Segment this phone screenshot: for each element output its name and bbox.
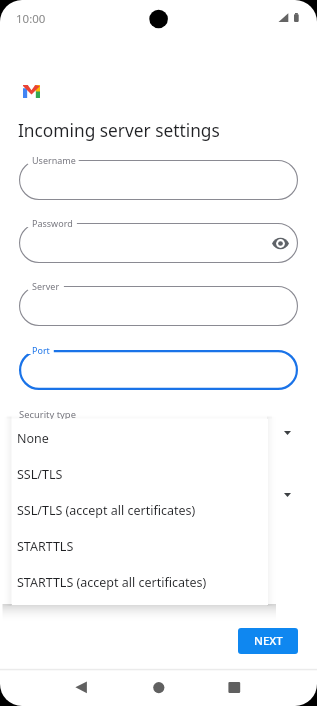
- button[interactable]: Port: [19, 350, 298, 390]
- button[interactable]: Server: [19, 286, 298, 326]
- button[interactable]: Expand dropdown: [276, 422, 298, 444]
- staticText: STARTTLS: [17, 538, 74, 555]
- button[interactable]: STARTTLS: [12, 528, 268, 564]
- button[interactable]: Recent apps: [214, 670, 254, 706]
- button[interactable]: Show password: [268, 231, 292, 255]
- staticText: Password: [32, 217, 73, 229]
- staticText: Security type: [19, 408, 76, 421]
- button[interactable]: Home: [139, 670, 179, 706]
- staticText: Username: [32, 154, 76, 166]
- staticText: 10:00: [16, 11, 46, 27]
- button[interactable]: STARTTLS (accept all certificates): [12, 564, 268, 600]
- button[interactable]: NEXT: [238, 628, 298, 654]
- staticText: None: [17, 430, 49, 447]
- staticText: SSL/TLS: [17, 466, 63, 483]
- staticText: STARTTLS (accept all certificates): [17, 574, 207, 591]
- button[interactable]: Back: [60, 670, 100, 706]
- button[interactable]: None: [12, 420, 268, 456]
- button[interactable]: SSL/TLS: [12, 456, 268, 492]
- staticText: Port: [32, 344, 50, 356]
- button[interactable]: Expand dropdown: [276, 484, 298, 506]
- button[interactable]: Password: [19, 223, 298, 263]
- staticText: Incoming server settings: [18, 119, 220, 143]
- staticText: NEXT: [254, 633, 283, 649]
- button[interactable]: Username: [19, 160, 298, 200]
- button[interactable]: SSL/TLS (accept all certificates): [12, 492, 268, 528]
- staticText: Server: [32, 280, 60, 292]
- staticText: SSL/TLS (accept all certificates): [17, 502, 196, 519]
